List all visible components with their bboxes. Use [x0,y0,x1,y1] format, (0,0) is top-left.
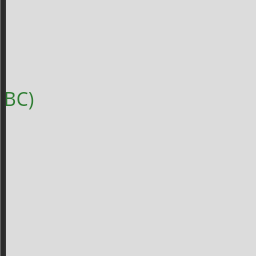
button [0,0,256,256]
staticText: (ABC) [0,86,34,112]
other: Side edge [0,0,6,256]
button[interactable]: (ABC) [0,86,34,112]
